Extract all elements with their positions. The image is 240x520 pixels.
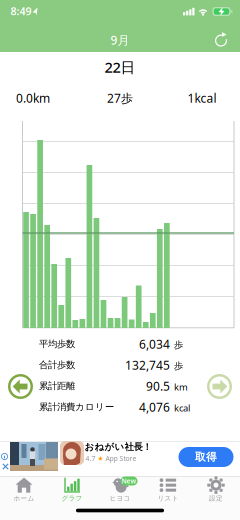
- button[interactable]: [8, 374, 32, 398]
- staticText: 90.5: [146, 378, 170, 394]
- staticText: 累計距離: [39, 380, 75, 392]
- staticText: 8:49: [10, 4, 31, 18]
- staticText: 6,034: [139, 336, 170, 352]
- button[interactable]: 設定: [193, 477, 239, 503]
- button[interactable]: [207, 374, 231, 398]
- staticText: 取得: [195, 450, 217, 463]
- button[interactable]: ヒヨコ: [97, 477, 143, 503]
- staticText: ★: [97, 455, 103, 462]
- staticText: App Store: [105, 454, 136, 463]
- staticText: 0.0km: [16, 90, 50, 106]
- staticText: New: [121, 477, 136, 485]
- staticText: 合計歩数: [39, 359, 75, 371]
- staticText: 設定: [209, 494, 223, 502]
- staticText: 1kcal: [187, 90, 216, 106]
- button[interactable]: リスト: [145, 477, 191, 503]
- staticText: 平均歩数: [39, 338, 75, 350]
- staticText: 9月: [110, 32, 129, 48]
- button[interactable]: ホーム: [1, 477, 47, 503]
- staticText: 132,745: [125, 357, 170, 373]
- staticText: km: [174, 381, 188, 393]
- button[interactable]: 取得: [178, 447, 233, 467]
- staticText: グラフ: [61, 494, 82, 502]
- staticText: 4.7: [85, 454, 95, 463]
- staticText: ヒヨコ: [109, 494, 130, 502]
- button[interactable]: グラフ: [49, 477, 95, 503]
- staticText: リスト: [157, 494, 178, 502]
- staticText: ホーム: [13, 494, 34, 502]
- staticText: 歩: [174, 360, 183, 372]
- staticText: 22日: [104, 57, 135, 77]
- staticText: kcal: [174, 402, 190, 414]
- button[interactable]: [211, 30, 231, 50]
- staticText: 27歩: [107, 90, 133, 106]
- staticText: 累計消費カロリー: [39, 401, 114, 413]
- button[interactable]: おねがい社長！: [0, 442, 240, 476]
- staticText: おねがい社長！: [84, 441, 151, 453]
- staticText: 歩: [174, 339, 183, 351]
- staticText: 4,076: [139, 399, 170, 415]
